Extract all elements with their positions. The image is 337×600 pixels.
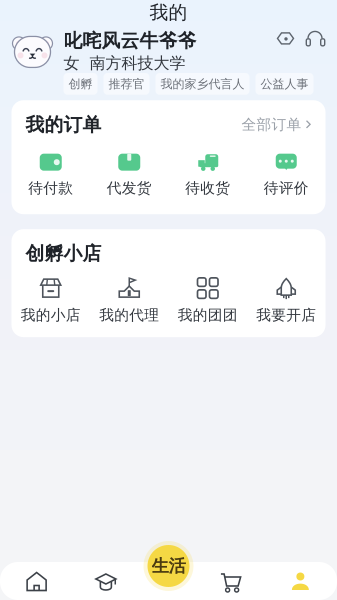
staticText: 我的团团 [178, 306, 238, 324]
staticText: 叱咤风云牛爷爷 [63, 29, 196, 52]
staticText: 待评价 [264, 179, 309, 197]
button[interactable]: 代发货 [90, 152, 168, 197]
button[interactable]: 我的代理 [90, 277, 168, 324]
staticText: 我要开店 [256, 306, 316, 324]
staticText: 我的家乡代言人 [160, 76, 244, 91]
button[interactable]: 我的 [266, 571, 335, 592]
staticText: 南方科技大学 [89, 53, 185, 73]
staticText: 全部订单 [241, 116, 301, 134]
staticText: 女 [63, 53, 79, 73]
staticText: 创孵 [68, 76, 92, 91]
button[interactable]: 待评价 [247, 152, 325, 197]
button[interactable]: 客服 [305, 29, 325, 48]
button[interactable]: 我要开店 [247, 277, 325, 324]
staticText: 创孵小店 [25, 242, 101, 265]
button[interactable]: 公益人事 [255, 73, 313, 95]
button[interactable]: 创孵 [63, 73, 97, 95]
staticText: 待付款 [28, 179, 73, 197]
button[interactable]: 我的小店 [11, 277, 90, 324]
staticText: 生活 [151, 555, 185, 577]
button[interactable]: 学习 [71, 571, 140, 592]
staticText: 我的代理 [99, 306, 159, 324]
button[interactable]: 购物车 [196, 571, 266, 592]
button[interactable]: 生活 [143, 541, 193, 591]
staticText: 代发货 [107, 179, 152, 197]
staticText: 我的订单 [25, 113, 101, 136]
button[interactable]: 我的家乡代言人 [155, 73, 249, 95]
button[interactable]: 推荐官 [103, 73, 149, 95]
staticText: 公益人事 [260, 76, 308, 91]
button[interactable]: 我的团团 [168, 277, 247, 324]
button[interactable]: 设置 [276, 29, 295, 48]
button[interactable]: 首页 [2, 571, 71, 592]
button[interactable]: 待收货 [168, 152, 247, 197]
staticText: 我的 [149, 1, 187, 24]
staticText: 推荐官 [108, 76, 144, 91]
staticText: 我的小店 [21, 306, 81, 324]
staticText: 待收货 [185, 179, 230, 197]
button[interactable]: 全部订单 [241, 116, 311, 134]
button[interactable]: 待付款 [11, 152, 90, 197]
